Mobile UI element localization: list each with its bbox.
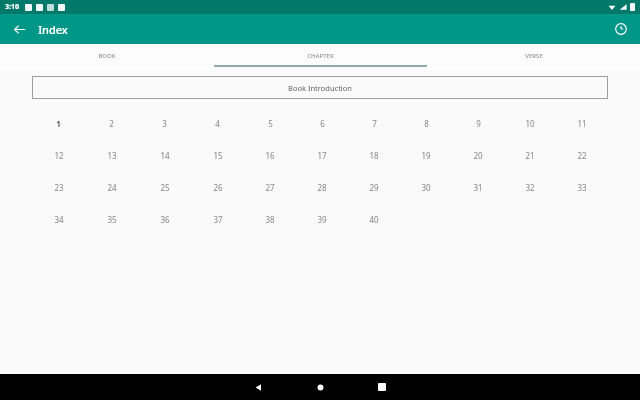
staticText: 20 — [473, 150, 483, 161]
button[interactable]: 24 — [85, 171, 138, 203]
staticText: 28 — [317, 182, 327, 193]
staticText: 6 — [320, 118, 325, 129]
staticText: 5 — [268, 118, 273, 129]
button[interactable]: 21 — [504, 139, 556, 171]
button[interactable]: 3 — [138, 107, 191, 139]
button[interactable]: 7 — [348, 107, 400, 139]
button[interactable]: 38 — [244, 203, 296, 235]
staticText: 19 — [421, 150, 431, 161]
button[interactable]: 5 — [244, 107, 296, 139]
button[interactable]: 16 — [244, 139, 296, 171]
staticText: Book Introduction — [288, 83, 352, 93]
button[interactable]: BOOK — [0, 44, 214, 70]
button[interactable]: 4 — [191, 107, 244, 139]
staticText: 30 — [421, 182, 431, 193]
staticText: 2 — [109, 118, 114, 129]
button[interactable]: Home — [300, 374, 340, 400]
staticText: 17 — [317, 150, 327, 161]
staticText: 12 — [54, 150, 64, 161]
staticText: 24 — [107, 182, 117, 193]
button[interactable]: 11 — [556, 107, 608, 139]
staticText: 1 — [56, 118, 61, 129]
staticText: 13 — [107, 150, 117, 161]
staticText: 39 — [317, 214, 327, 225]
staticText: 8 — [424, 118, 429, 129]
staticText: 15 — [213, 150, 223, 161]
staticText: 22 — [577, 150, 587, 161]
button[interactable]: 26 — [191, 171, 244, 203]
staticText: 35 — [107, 214, 117, 225]
staticText: 31 — [473, 182, 483, 193]
button[interactable]: 2 — [85, 107, 138, 139]
staticText: 25 — [160, 182, 170, 193]
staticText: 9 — [476, 118, 481, 129]
staticText: 14 — [160, 150, 170, 161]
button[interactable]: 18 — [348, 139, 400, 171]
staticText: 10 — [525, 118, 535, 129]
button[interactable]: 13 — [85, 139, 138, 171]
staticText: 11 — [577, 118, 587, 129]
staticText: 3:10 — [5, 2, 19, 12]
staticText: 36 — [160, 214, 170, 225]
button[interactable]: 28 — [296, 171, 348, 203]
button[interactable]: 37 — [191, 203, 244, 235]
staticText: Index — [38, 22, 68, 37]
button[interactable]: 39 — [296, 203, 348, 235]
staticText: 33 — [577, 182, 587, 193]
staticText: 23 — [54, 182, 64, 193]
button[interactable]: 19 — [400, 139, 452, 171]
staticText: 37 — [213, 214, 223, 225]
button[interactable]: 32 — [504, 171, 556, 203]
staticText: 16 — [265, 150, 275, 161]
button[interactable]: 17 — [296, 139, 348, 171]
button[interactable]: 8 — [400, 107, 452, 139]
button[interactable]: 6 — [296, 107, 348, 139]
button[interactable]: 10 — [504, 107, 556, 139]
button[interactable]: 14 — [138, 139, 191, 171]
button[interactable]: 31 — [452, 171, 504, 203]
staticText: BOOK — [98, 52, 116, 60]
staticText: 26 — [213, 182, 223, 193]
staticText: 7 — [372, 118, 377, 129]
staticText: 29 — [369, 182, 379, 193]
button[interactable]: 1 — [32, 107, 85, 139]
staticText: 27 — [265, 182, 275, 193]
staticText: VERSE — [525, 52, 543, 60]
button[interactable]: Recents — [362, 374, 402, 400]
button[interactable]: 23 — [32, 171, 85, 203]
button[interactable]: Book Introduction — [32, 76, 608, 99]
staticText: CHAPTER — [307, 52, 334, 60]
button[interactable]: 9 — [452, 107, 504, 139]
button[interactable]: Back — [238, 374, 278, 400]
button[interactable]: History — [610, 18, 632, 40]
staticText: 32 — [525, 182, 535, 193]
staticText: 34 — [54, 214, 64, 225]
button[interactable]: CHAPTER — [214, 44, 427, 70]
button[interactable]: 34 — [32, 203, 85, 235]
button[interactable]: 25 — [138, 171, 191, 203]
button[interactable]: 15 — [191, 139, 244, 171]
staticText: 21 — [525, 150, 535, 161]
button[interactable]: 40 — [348, 203, 400, 235]
staticText: 18 — [369, 150, 379, 161]
button[interactable]: 29 — [348, 171, 400, 203]
staticText: 38 — [265, 214, 275, 225]
button[interactable]: VERSE — [427, 44, 640, 70]
button[interactable]: 27 — [244, 171, 296, 203]
button[interactable]: 22 — [556, 139, 608, 171]
button[interactable]: 36 — [138, 203, 191, 235]
button[interactable]: 35 — [85, 203, 138, 235]
staticText: 3 — [162, 118, 167, 129]
button[interactable]: 30 — [400, 171, 452, 203]
staticText: 40 — [369, 214, 379, 225]
button[interactable]: 20 — [452, 139, 504, 171]
button[interactable]: 12 — [32, 139, 85, 171]
button[interactable]: 33 — [556, 171, 608, 203]
button[interactable]: Back — [8, 18, 30, 40]
staticText: 4 — [215, 118, 220, 129]
